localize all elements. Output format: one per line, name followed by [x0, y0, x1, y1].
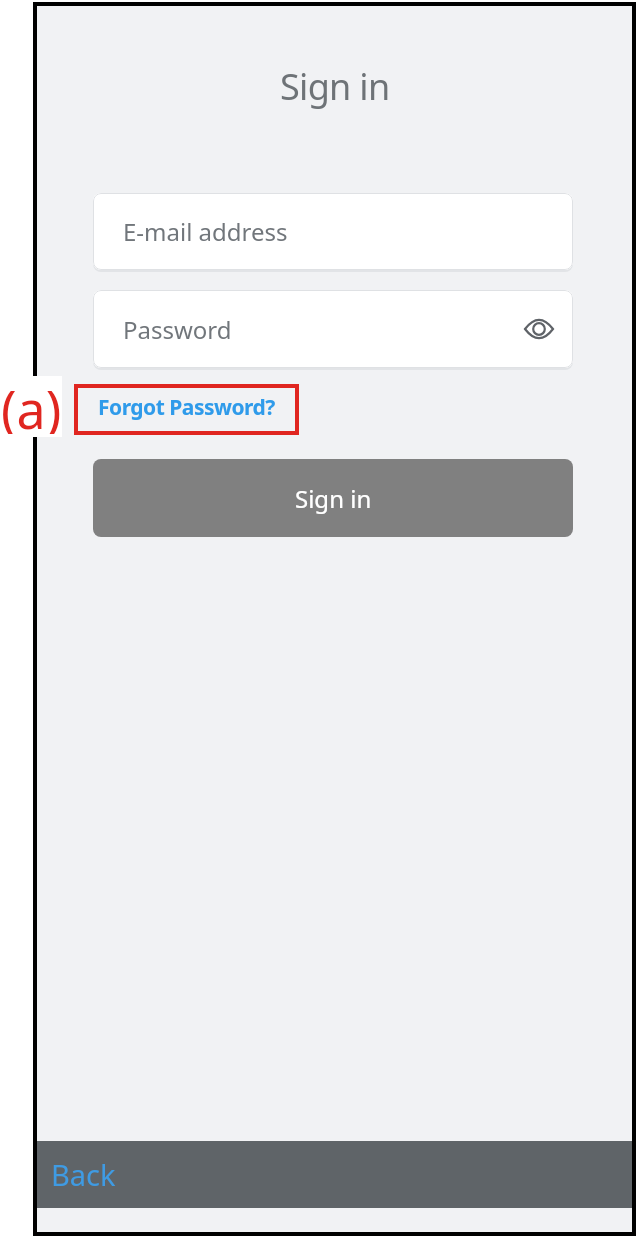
button[interactable] — [524, 319, 554, 339]
button[interactable]: Password — [93, 290, 573, 368]
staticText: Sign in — [280, 62, 390, 111]
button[interactable]: Forgot Password? — [98, 393, 275, 422]
button[interactable]: Back — [37, 1141, 632, 1208]
staticText: Back — [51, 1155, 116, 1194]
staticText: Sign in — [295, 482, 372, 515]
button[interactable]: Sign in — [93, 459, 573, 537]
staticText: Password — [123, 313, 232, 346]
staticText: (a) — [1, 373, 62, 434]
button[interactable]: E-mail address — [93, 193, 573, 270]
staticText: E-mail address — [123, 215, 288, 248]
